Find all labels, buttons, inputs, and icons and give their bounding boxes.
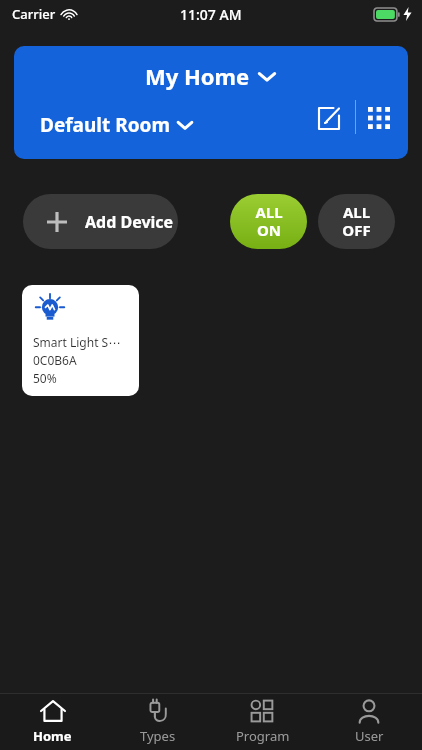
staticText: Home [33,727,72,745]
staticText: Types [140,727,176,745]
button[interactable]: User [316,693,422,750]
button[interactable]: Edit [312,102,345,135]
staticText: Carrier [12,5,56,23]
staticText: User [355,727,384,745]
staticText: 50% [33,370,57,386]
staticText: 11:07 AM [180,5,242,24]
button[interactable]: Types [105,693,210,750]
button[interactable]: Program [210,693,316,750]
staticText: ALL ON [255,202,283,241]
staticText: ALL OFF [342,202,371,241]
button[interactable]: Home [0,693,105,750]
button[interactable]: Add Device [23,194,178,249]
staticText: Default Room [40,112,170,138]
staticText: My Home [145,61,250,91]
button[interactable]: Default Room [32,109,202,141]
staticText: 0C0B6A [33,352,77,368]
button[interactable]: Grid view [364,103,394,133]
staticText: Program [236,727,290,745]
button[interactable]: ALL ON [230,194,307,249]
button[interactable]: My Home [137,58,285,94]
button[interactable]: ALL OFF [318,194,395,249]
staticText: Add Device [85,211,174,233]
staticText: Smart Light S⋯ [33,334,121,350]
button[interactable]: Smart Light S⋯ [22,285,139,396]
